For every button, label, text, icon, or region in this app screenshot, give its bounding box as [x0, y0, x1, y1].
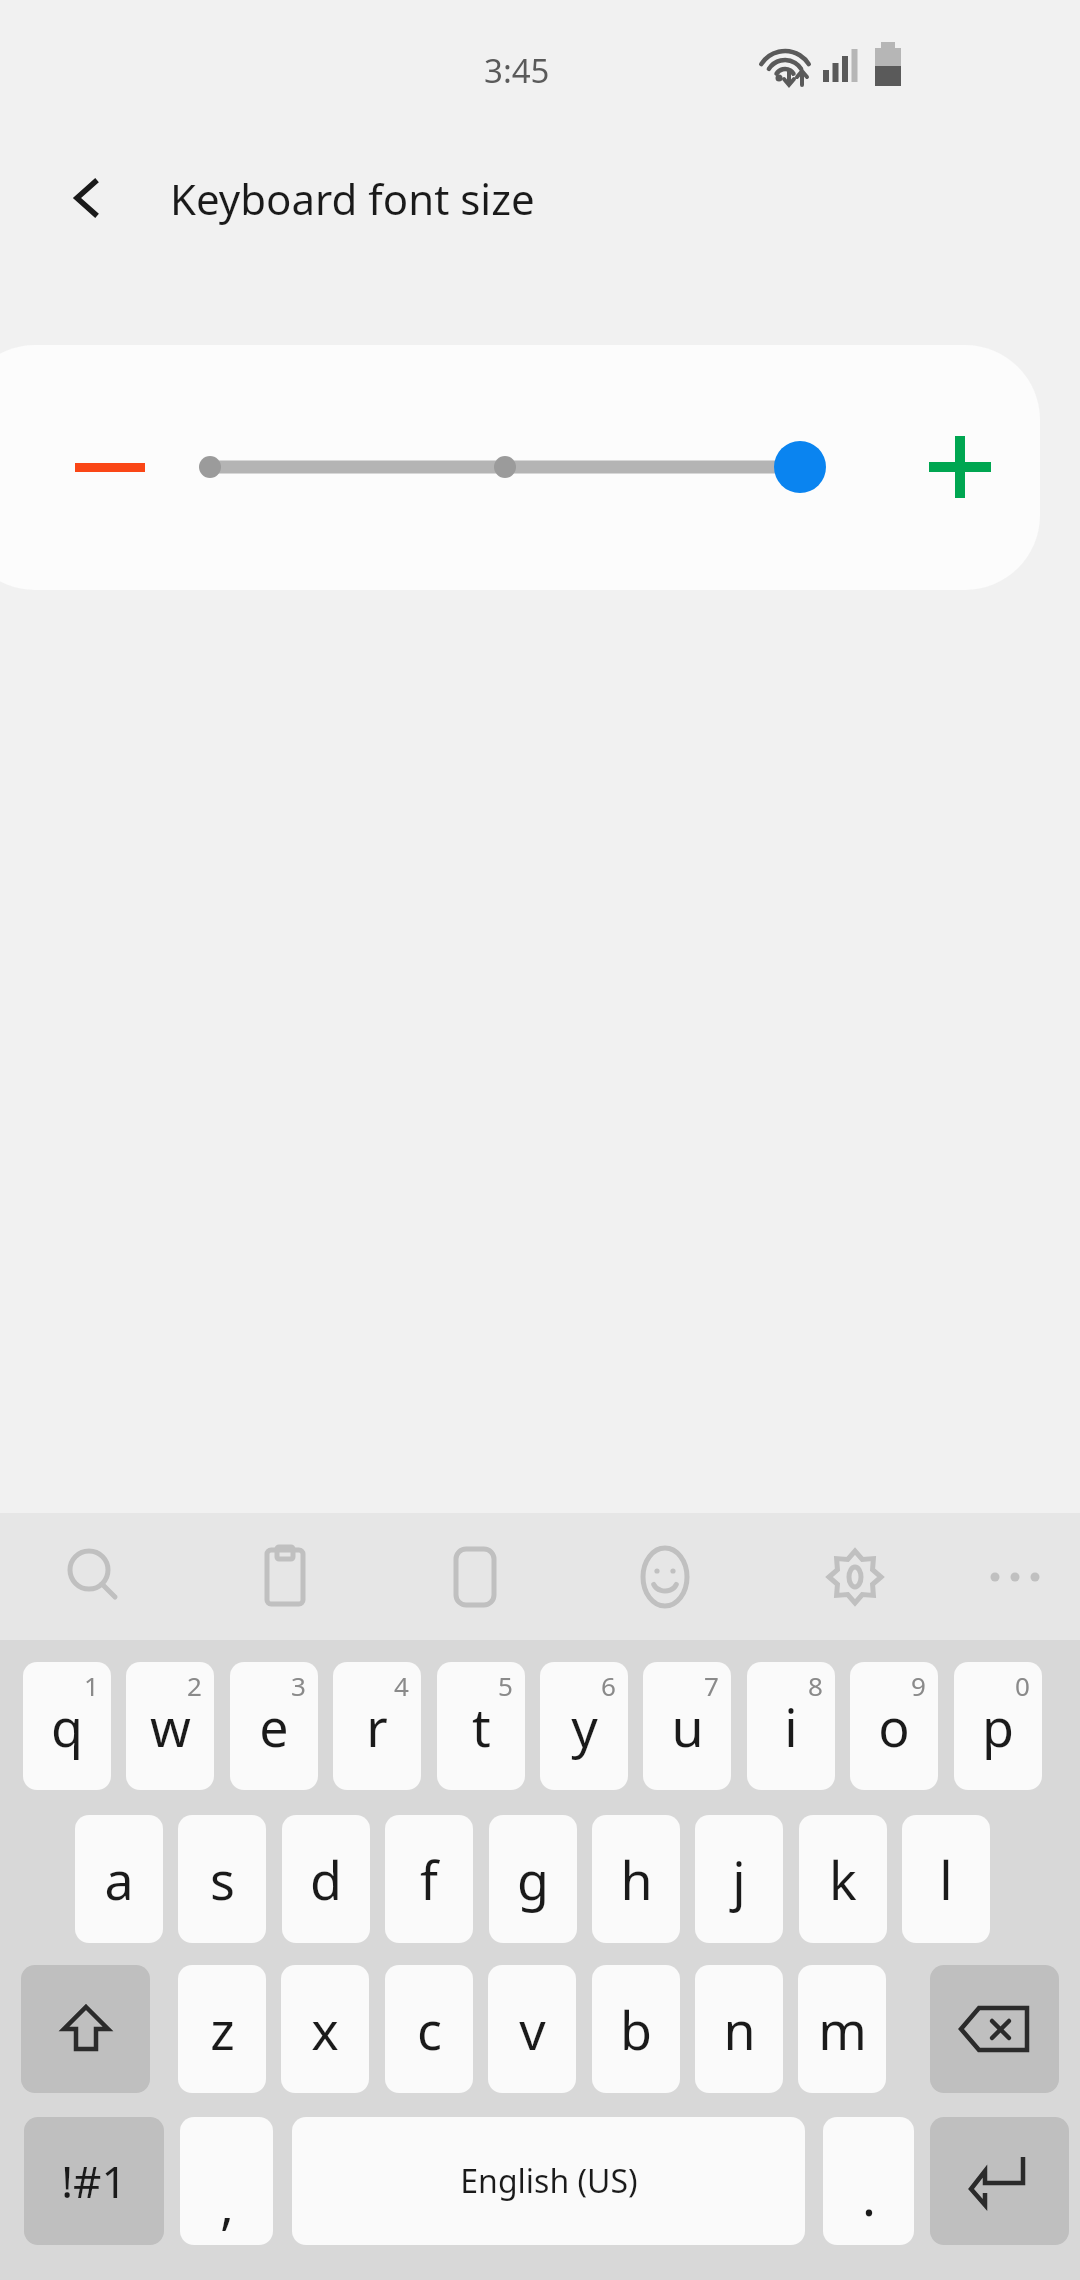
staticText: f — [420, 1844, 438, 1915]
button[interactable]: Symbols — [24, 2117, 164, 2245]
button[interactable]: y — [540, 1662, 628, 1790]
button[interactable]: j — [695, 1815, 783, 1943]
button[interactable]: d — [282, 1815, 370, 1943]
button[interactable]: e — [230, 1662, 318, 1790]
button[interactable]: g — [489, 1815, 577, 1943]
staticText: g — [517, 1844, 549, 1915]
staticText: o — [878, 1691, 910, 1762]
staticText: 4 — [394, 1668, 409, 1703]
button[interactable]: Search — [32, 1514, 158, 1639]
button[interactable]: Decrease font size — [40, 397, 180, 537]
button[interactable]: Backspace — [930, 1965, 1059, 2093]
staticText: 3:45 — [484, 48, 550, 93]
button[interactable]: . — [823, 2117, 914, 2245]
button[interactable]: v — [488, 1965, 576, 2093]
button[interactable]: n — [695, 1965, 783, 2093]
staticText: 7 — [704, 1668, 719, 1703]
staticText: x — [311, 1994, 339, 2065]
button[interactable]: q — [23, 1662, 111, 1790]
staticText: English (US) — [460, 2159, 638, 2203]
button[interactable]: , — [180, 2117, 273, 2245]
button[interactable]: t — [437, 1662, 525, 1790]
staticText: 6 — [601, 1668, 616, 1703]
staticText: p — [982, 1691, 1014, 1762]
button[interactable]: Shift — [21, 1965, 150, 2093]
staticText: r — [366, 1691, 388, 1762]
button[interactable]: r — [333, 1662, 421, 1790]
staticText: j — [732, 1844, 746, 1915]
button[interactable]: Settings — [792, 1514, 918, 1639]
button[interactable]: m — [798, 1965, 886, 2093]
button[interactable]: s — [178, 1815, 266, 1943]
staticText: d — [310, 1844, 342, 1915]
staticText: 5 — [498, 1668, 513, 1703]
staticText: z — [210, 1994, 235, 2065]
button[interactable]: o — [850, 1662, 938, 1790]
button[interactable]: c — [385, 1965, 473, 2093]
staticText: 2 — [187, 1668, 202, 1703]
staticText: a — [104, 1844, 134, 1915]
button[interactable]: z — [178, 1965, 266, 2093]
staticText: e — [259, 1691, 289, 1762]
button[interactable]: a — [75, 1815, 163, 1943]
staticText: h — [620, 1844, 653, 1915]
button[interactable]: i — [747, 1662, 835, 1790]
button[interactable]: w — [126, 1662, 214, 1790]
staticText: q — [51, 1691, 83, 1762]
staticText: l — [939, 1844, 953, 1915]
button[interactable]: x — [281, 1965, 369, 2093]
button[interactable]: k — [799, 1815, 887, 1943]
button[interactable]: More options — [952, 1514, 1078, 1639]
button[interactable]: p — [954, 1662, 1042, 1790]
button[interactable]: Enter — [930, 2117, 1069, 2245]
staticText: 8 — [808, 1668, 823, 1703]
staticText: !#1 — [61, 2151, 127, 2211]
button[interactable]: b — [592, 1965, 680, 2093]
button[interactable]: GIF — [412, 1514, 538, 1639]
staticText: Keyboard font size — [170, 170, 535, 227]
staticText: 0 — [1015, 1668, 1030, 1703]
staticText: m — [818, 1994, 867, 2065]
staticText: . — [862, 2160, 876, 2231]
staticText: t — [472, 1691, 491, 1762]
staticText: k — [829, 1844, 857, 1915]
button[interactable]: Increase font size — [890, 397, 1030, 537]
staticText: i — [784, 1691, 798, 1762]
button[interactable]: f — [385, 1815, 473, 1943]
button[interactable]: Back — [50, 160, 126, 236]
staticText: c — [417, 1994, 442, 2065]
staticText: b — [620, 1994, 652, 2065]
staticText: w — [150, 1691, 191, 1762]
button[interactable]: l — [902, 1815, 990, 1943]
staticText: y — [571, 1691, 598, 1762]
staticText: 1 — [84, 1668, 99, 1703]
button[interactable]: u — [643, 1662, 731, 1790]
staticText: n — [723, 1994, 756, 2065]
staticText: s — [210, 1844, 235, 1915]
button[interactable]: Font size slider — [180, 397, 880, 537]
button[interactable]: Emoji — [602, 1514, 728, 1639]
staticText: , — [220, 2168, 234, 2239]
staticText: 9 — [911, 1668, 926, 1703]
staticText: 3 — [291, 1668, 306, 1703]
button[interactable]: h — [592, 1815, 680, 1943]
staticText: u — [671, 1691, 704, 1762]
button[interactable]: Clipboard — [222, 1514, 348, 1639]
staticText: v — [519, 1994, 546, 2065]
button[interactable]: English (US) — [292, 2117, 805, 2245]
